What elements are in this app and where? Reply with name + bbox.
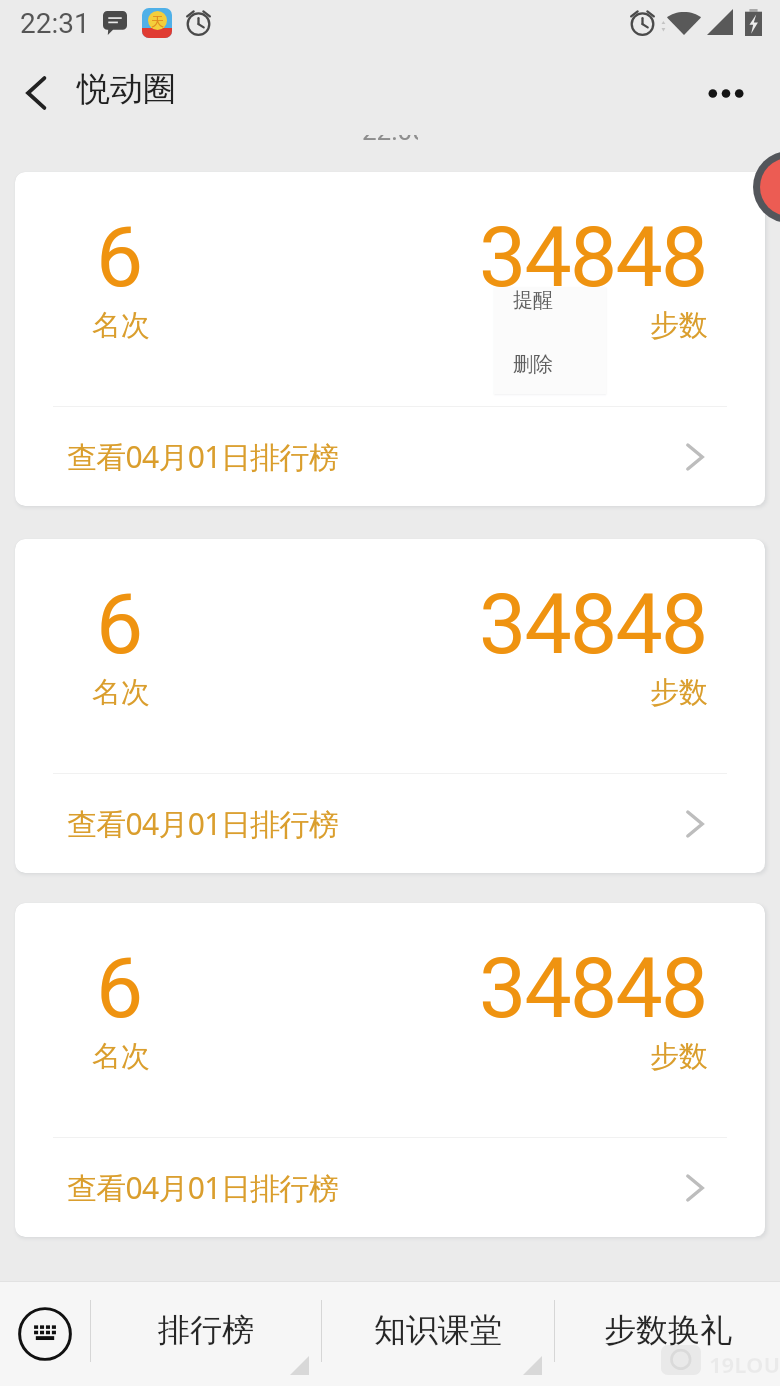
button[interactable]: 删除 [494, 340, 606, 394]
staticText: 知识课堂 [374, 1310, 502, 1350]
button[interactable]: Back [9, 66, 63, 120]
button[interactable]: 步数换礼 [555, 1281, 780, 1386]
button[interactable]: 查看04月01日排行榜 [15, 1138, 765, 1237]
button[interactable]: 提醒 [494, 287, 606, 340]
staticText: 步数 [650, 674, 708, 711]
staticText: 名次 [92, 307, 150, 344]
staticText: 步数 [650, 307, 708, 344]
staticText: 排行榜 [158, 1310, 254, 1350]
staticText: 6 [96, 939, 144, 1037]
staticText: 19LOU [709, 1349, 780, 1379]
staticText: 天 [151, 13, 164, 29]
button[interactable]: 排行榜 [91, 1281, 321, 1386]
staticText: 34848 [479, 575, 707, 673]
button[interactable]: Keyboard [4, 1281, 86, 1386]
staticText: 查看04月01日排行榜 [67, 803, 338, 844]
staticText: 提醒 [513, 288, 553, 313]
staticText: 名次 [92, 1038, 150, 1075]
staticText: 查看04月01日排行榜 [67, 436, 338, 477]
button[interactable]: 查看04月01日排行榜 [15, 774, 765, 873]
staticText: 步数换礼 [604, 1310, 732, 1350]
button[interactable]: 查看04月01日排行榜 [15, 407, 765, 506]
staticText: 34848 [479, 208, 707, 306]
staticText: 6 [96, 208, 144, 306]
staticText: 6 [96, 575, 144, 673]
staticText: 步数 [650, 1038, 708, 1075]
staticText: 查看04月01日排行榜 [67, 1167, 338, 1208]
staticText: 删除 [513, 352, 553, 377]
button[interactable]: 知识课堂 [322, 1281, 554, 1386]
button[interactable]: More options [693, 56, 759, 130]
staticText: 22:00 [362, 135, 418, 140]
staticText: 34848 [479, 939, 707, 1037]
staticText: 22:31 [20, 7, 90, 40]
staticText: 悦动圈 [77, 68, 176, 110]
staticText: 名次 [92, 674, 150, 711]
button[interactable]: Quick action [760, 158, 780, 216]
